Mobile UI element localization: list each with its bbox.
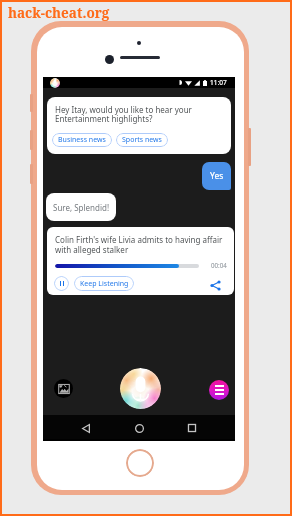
button[interactable]: Share (207, 277, 223, 293)
button[interactable]: Pause (54, 276, 69, 291)
button[interactable]: Image (54, 379, 73, 398)
staticText: Yes (210, 170, 224, 182)
button[interactable]: Back (76, 418, 96, 438)
button[interactable]: Microphone (120, 368, 161, 409)
button[interactable]: Menu (209, 380, 229, 400)
button[interactable]: Hey Itay, would you like to hear your En… (47, 97, 231, 154)
staticText: Business news (58, 135, 106, 145)
staticText: Colin Firth's wife Livia admits to havin… (55, 234, 223, 255)
staticText: Keep Listening (80, 279, 129, 289)
button[interactable]: Colin Firth's wife Livia admits to havin… (47, 227, 234, 295)
staticText: hack-cheat.org (8, 4, 110, 22)
button[interactable]: Sports news (116, 133, 168, 147)
staticText: Hey Itay, would you like to hear your En… (55, 104, 192, 125)
button[interactable]: Business news (52, 133, 112, 147)
staticText: Sure, Splendid! (53, 202, 110, 213)
button[interactable]: Home (129, 418, 149, 438)
button[interactable]: Recents (182, 418, 202, 438)
button[interactable]: Keep Listening (74, 276, 134, 291)
staticText: Sports news (122, 135, 162, 145)
button[interactable]: Yes (202, 162, 231, 190)
button[interactable]: Sure, Splendid! (46, 193, 116, 221)
staticText: 00:04 (211, 261, 227, 269)
staticText: 11:07 (210, 78, 227, 87)
